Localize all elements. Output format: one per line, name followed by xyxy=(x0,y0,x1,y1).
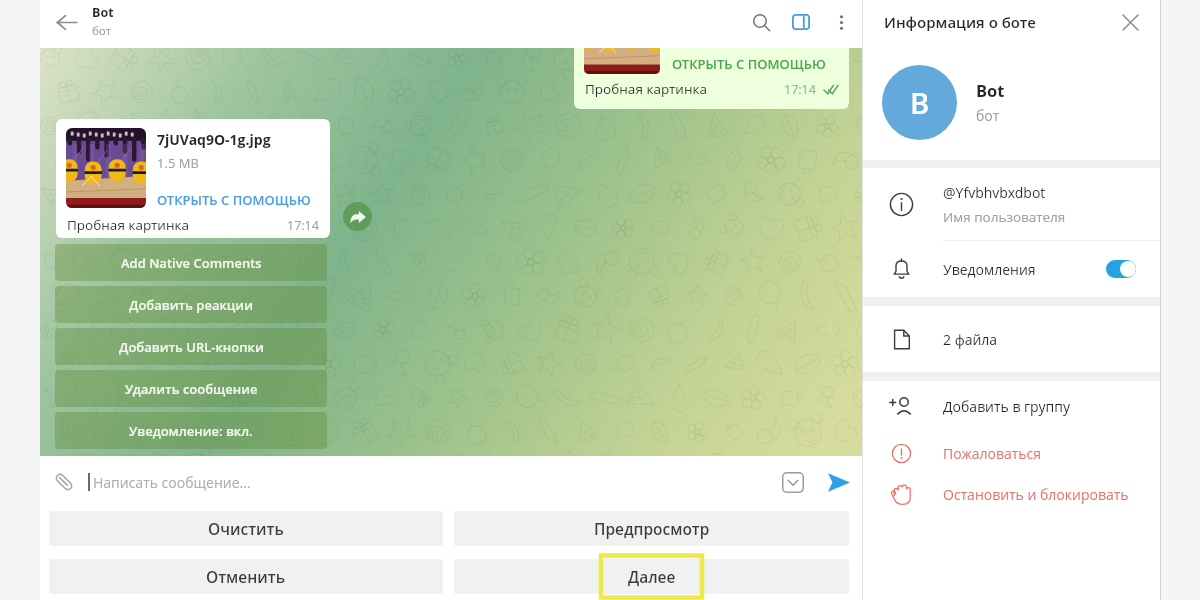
button[interactable]: Attach file xyxy=(40,456,88,508)
staticText: Добавить URL-кнопки xyxy=(119,338,264,356)
staticText: Уведомление: вкл. xyxy=(129,422,253,440)
staticText: бот xyxy=(976,106,1000,125)
staticText: Bot xyxy=(92,4,114,21)
staticText: Остановить и блокировать xyxy=(943,485,1129,504)
button[interactable]: Close xyxy=(1108,0,1152,44)
staticText: Add Native Comments xyxy=(121,254,262,272)
staticText: Пробная картинка xyxy=(67,216,189,234)
staticText: Предпросмотр xyxy=(594,518,710,539)
staticText: Добавить в группу xyxy=(943,397,1070,416)
button[interactable]: Предпросмотр xyxy=(454,511,849,546)
button[interactable]: 2 файла xyxy=(863,306,1160,372)
staticText: @Yfvbhvbxdbot xyxy=(943,183,1046,202)
button[interactable]: Удалить сообщение xyxy=(55,370,327,407)
staticText: B xyxy=(910,83,930,122)
staticText: Очистить xyxy=(208,518,284,539)
button[interactable]: Добавить в группу xyxy=(863,381,1160,431)
staticText: 17:14 xyxy=(784,81,816,98)
staticText: Написать сообщение... xyxy=(93,473,251,492)
staticText: Пробная картинка xyxy=(585,80,707,98)
button[interactable]: @Yfvbhvbxdbot xyxy=(863,168,1160,240)
staticText: Далее xyxy=(628,566,676,587)
button[interactable]: Очистить xyxy=(49,511,443,546)
button[interactable]: Add Native Comments xyxy=(55,244,327,281)
staticText: Пожаловаться xyxy=(943,444,1041,463)
button[interactable]: Emoji xyxy=(769,456,816,508)
staticText: Информация о боте xyxy=(884,12,1036,32)
button[interactable]: 7jUVaq9O-1g.jpg xyxy=(56,119,330,238)
button[interactable]: Уведомление: вкл. xyxy=(55,412,327,449)
staticText: Удалить сообщение xyxy=(125,380,258,398)
staticText: 1.5 MB xyxy=(157,154,199,172)
button[interactable]: Добавить реакции xyxy=(55,286,327,323)
staticText: Имя пользователя xyxy=(943,208,1066,226)
staticText: 7jUVaq9O-1g.jpg xyxy=(157,130,271,149)
staticText: 17:14 xyxy=(287,217,319,234)
button[interactable]: Добавить URL-кнопки xyxy=(55,328,327,365)
button[interactable]: More options xyxy=(820,0,862,46)
button[interactable]: Отменить xyxy=(49,559,443,594)
button[interactable]: ОТКРЫТЬ С ПОМОЩЬЮ xyxy=(574,48,849,109)
button[interactable]: Notifications toggle xyxy=(1106,260,1136,278)
button[interactable]: Далее xyxy=(454,559,849,594)
staticText: Уведомления xyxy=(943,260,1036,279)
button[interactable]: Back xyxy=(40,0,92,46)
button[interactable]: Toggle info panel xyxy=(782,0,820,46)
staticText: Bot xyxy=(976,79,1005,101)
button[interactable]: Search xyxy=(741,0,782,46)
button[interactable]: Уведомления xyxy=(863,241,1160,297)
button[interactable]: Send message xyxy=(816,456,861,508)
staticText: Добавить реакции xyxy=(129,296,253,314)
button[interactable]: Bot avatar xyxy=(882,65,957,140)
staticText: ОТКРЫТЬ С ПОМОЩЬЮ xyxy=(157,191,311,209)
button[interactable]: Forward xyxy=(343,202,372,231)
button[interactable]: Пожаловаться xyxy=(863,431,1160,475)
staticText: 2 файла xyxy=(943,330,998,349)
staticText: Отменить xyxy=(206,566,286,587)
staticText: бот xyxy=(92,23,112,39)
button[interactable]: Остановить и блокировать xyxy=(863,475,1160,514)
staticText: ОТКРЫТЬ С ПОМОЩЬЮ xyxy=(672,55,826,73)
